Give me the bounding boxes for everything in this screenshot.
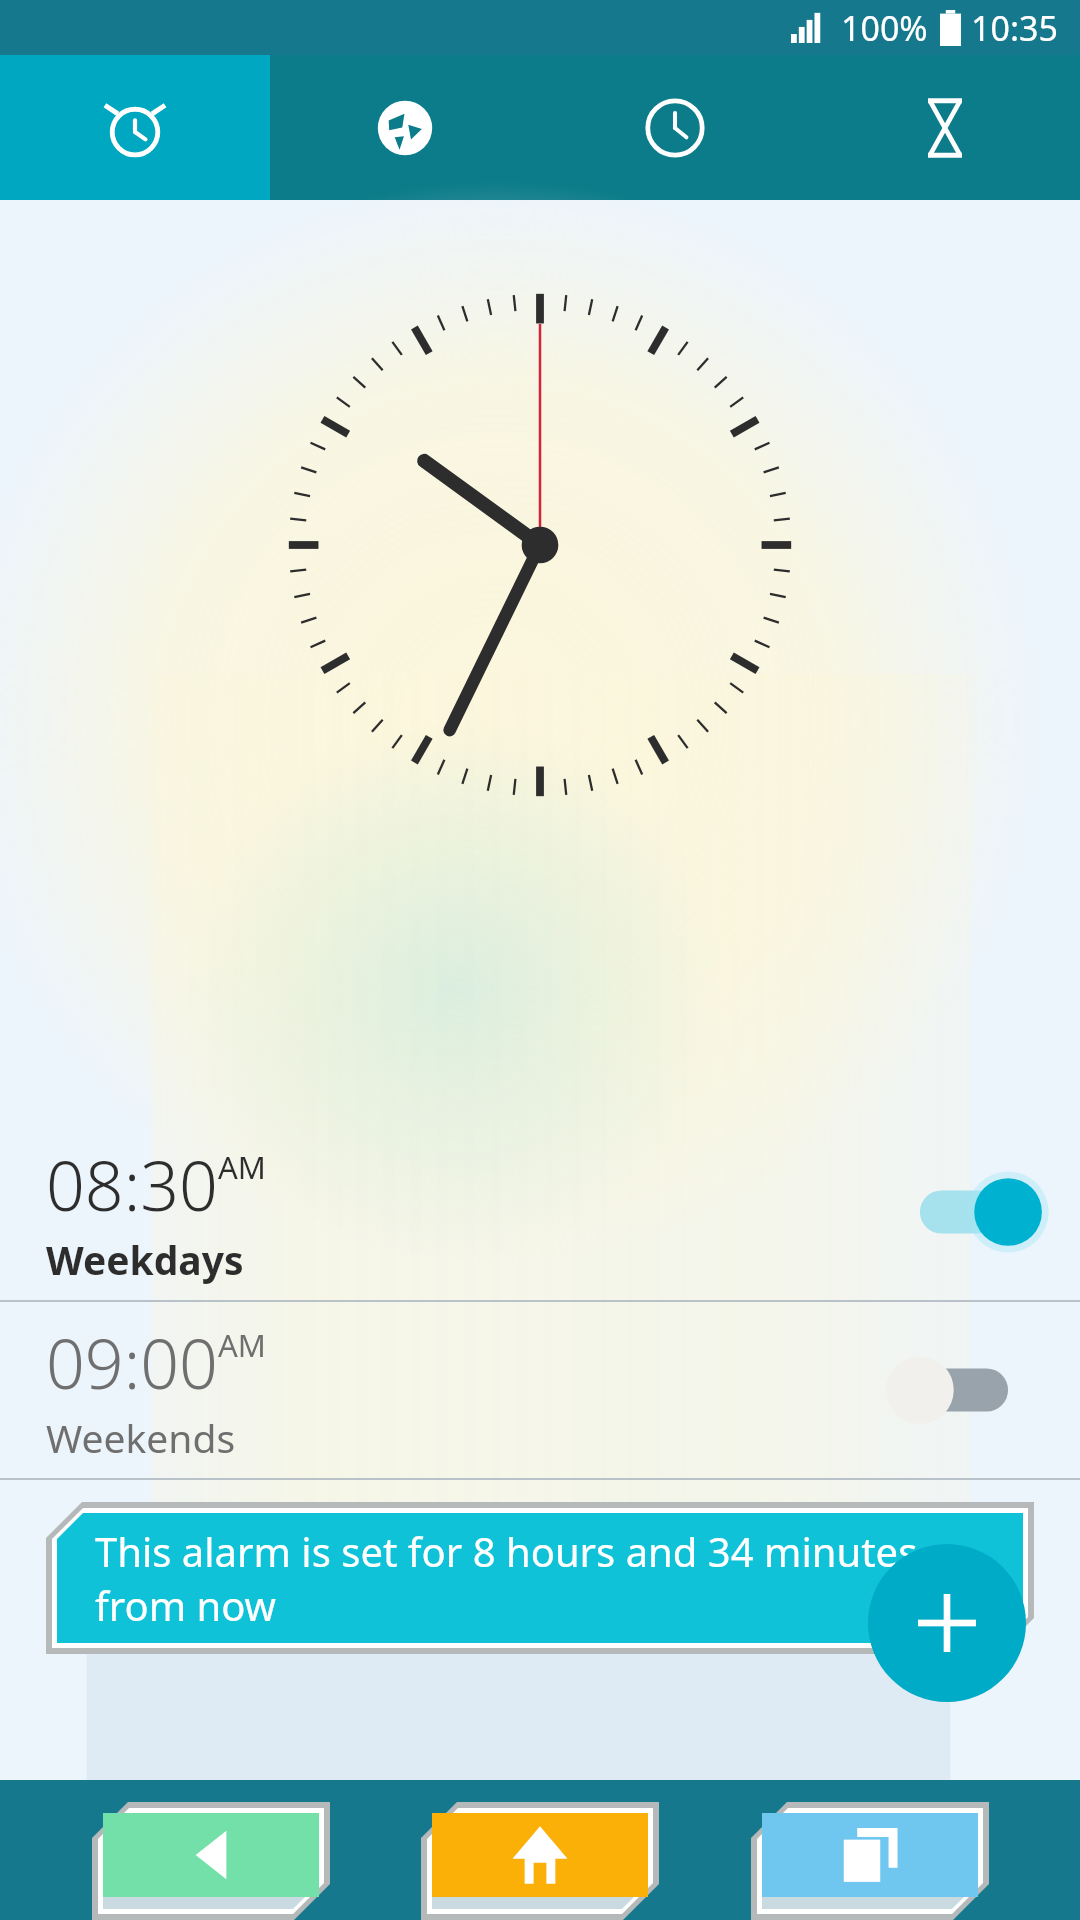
staticText: Weekends xyxy=(46,1411,236,1464)
staticText: 08:30 xyxy=(46,1138,218,1231)
staticText: AM xyxy=(218,1146,266,1188)
staticText: 09:00 xyxy=(46,1316,218,1409)
staticText: This alarm is set for 8 hours and 34 min… xyxy=(95,1524,985,1632)
button[interactable]: Back xyxy=(103,1813,319,1909)
staticText: AM xyxy=(218,1324,266,1366)
button[interactable]: Home xyxy=(432,1813,648,1909)
staticText: 10:35 xyxy=(971,5,1058,51)
button[interactable]: Alarm off xyxy=(906,1354,1022,1426)
button[interactable]: Recent apps xyxy=(762,1813,978,1909)
button[interactable]: 08:30 xyxy=(0,1124,1080,1300)
staticText: Weekdays xyxy=(46,1233,244,1286)
button[interactable]: 09:00 xyxy=(0,1302,1080,1478)
staticText: 100% xyxy=(841,5,928,51)
button[interactable]: Alarm on xyxy=(906,1176,1022,1248)
button[interactable]: Timer xyxy=(810,55,1080,200)
button[interactable]: Add alarm xyxy=(868,1544,1026,1702)
button[interactable]: World clock xyxy=(270,55,540,200)
button[interactable]: This alarm is set for 8 hours and 34 min… xyxy=(57,1513,1023,1643)
button[interactable]: Alarm xyxy=(0,55,270,200)
button[interactable]: Stopwatch xyxy=(540,55,810,200)
